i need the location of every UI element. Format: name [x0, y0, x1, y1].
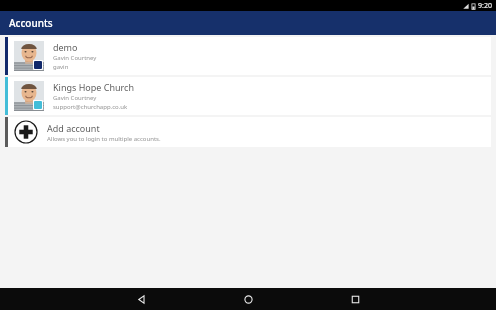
staticText: Accounts [9, 16, 53, 30]
button[interactable]: Add account [5, 117, 491, 147]
other: Add account [14, 120, 38, 144]
staticText: Allows you to login to multiple accounts… [47, 135, 161, 143]
staticText: Gavin Courtney [53, 54, 97, 62]
staticText: demo [53, 41, 78, 53]
staticText: Kings Hope Church [53, 81, 134, 93]
button[interactable]: Home [237, 288, 259, 310]
staticText: support@churchapp.co.uk [53, 103, 128, 111]
button[interactable]: demo [5, 37, 491, 75]
staticText: gavin [53, 63, 69, 71]
button[interactable]: Recent apps [344, 288, 366, 310]
staticText: 9:20 [478, 1, 492, 11]
button[interactable]: Kings Hope Church [5, 77, 491, 115]
button[interactable]: Back [130, 288, 152, 310]
staticText: Gavin Courtney [53, 94, 97, 102]
staticText: Add account [47, 122, 100, 134]
